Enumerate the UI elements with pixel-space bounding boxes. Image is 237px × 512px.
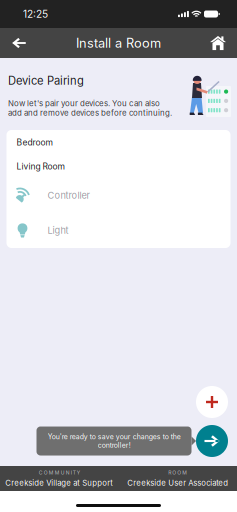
staticText: Controller (47, 190, 89, 201)
staticText: Install a Room (76, 35, 161, 51)
button[interactable]: Back (0, 28, 38, 58)
staticText: Light (47, 225, 68, 236)
button[interactable]: Controller (6, 178, 230, 213)
button[interactable]: R O O M (118, 466, 237, 491)
staticText: Device Pairing (8, 74, 84, 88)
staticText: Creekside Village at Support (5, 478, 113, 487)
button[interactable]: Light (6, 213, 230, 248)
button[interactable]: Add device (196, 386, 228, 418)
staticText: C O M M U N I T Y (39, 469, 80, 476)
staticText: You're ready to save your changes to the… (47, 433, 180, 449)
staticText: 12:25 (23, 8, 48, 20)
button[interactable]: C O M M U N I T Y (0, 466, 118, 491)
staticText: Bedroom (16, 137, 52, 148)
button[interactable]: Continue (196, 425, 228, 457)
staticText: Creekside User Associated (127, 478, 228, 487)
button[interactable]: Home (199, 28, 237, 58)
staticText: Now let's pair your devices. You can als… (8, 99, 172, 118)
staticText: R O O M (168, 469, 187, 476)
staticText: Living Room (16, 161, 64, 172)
